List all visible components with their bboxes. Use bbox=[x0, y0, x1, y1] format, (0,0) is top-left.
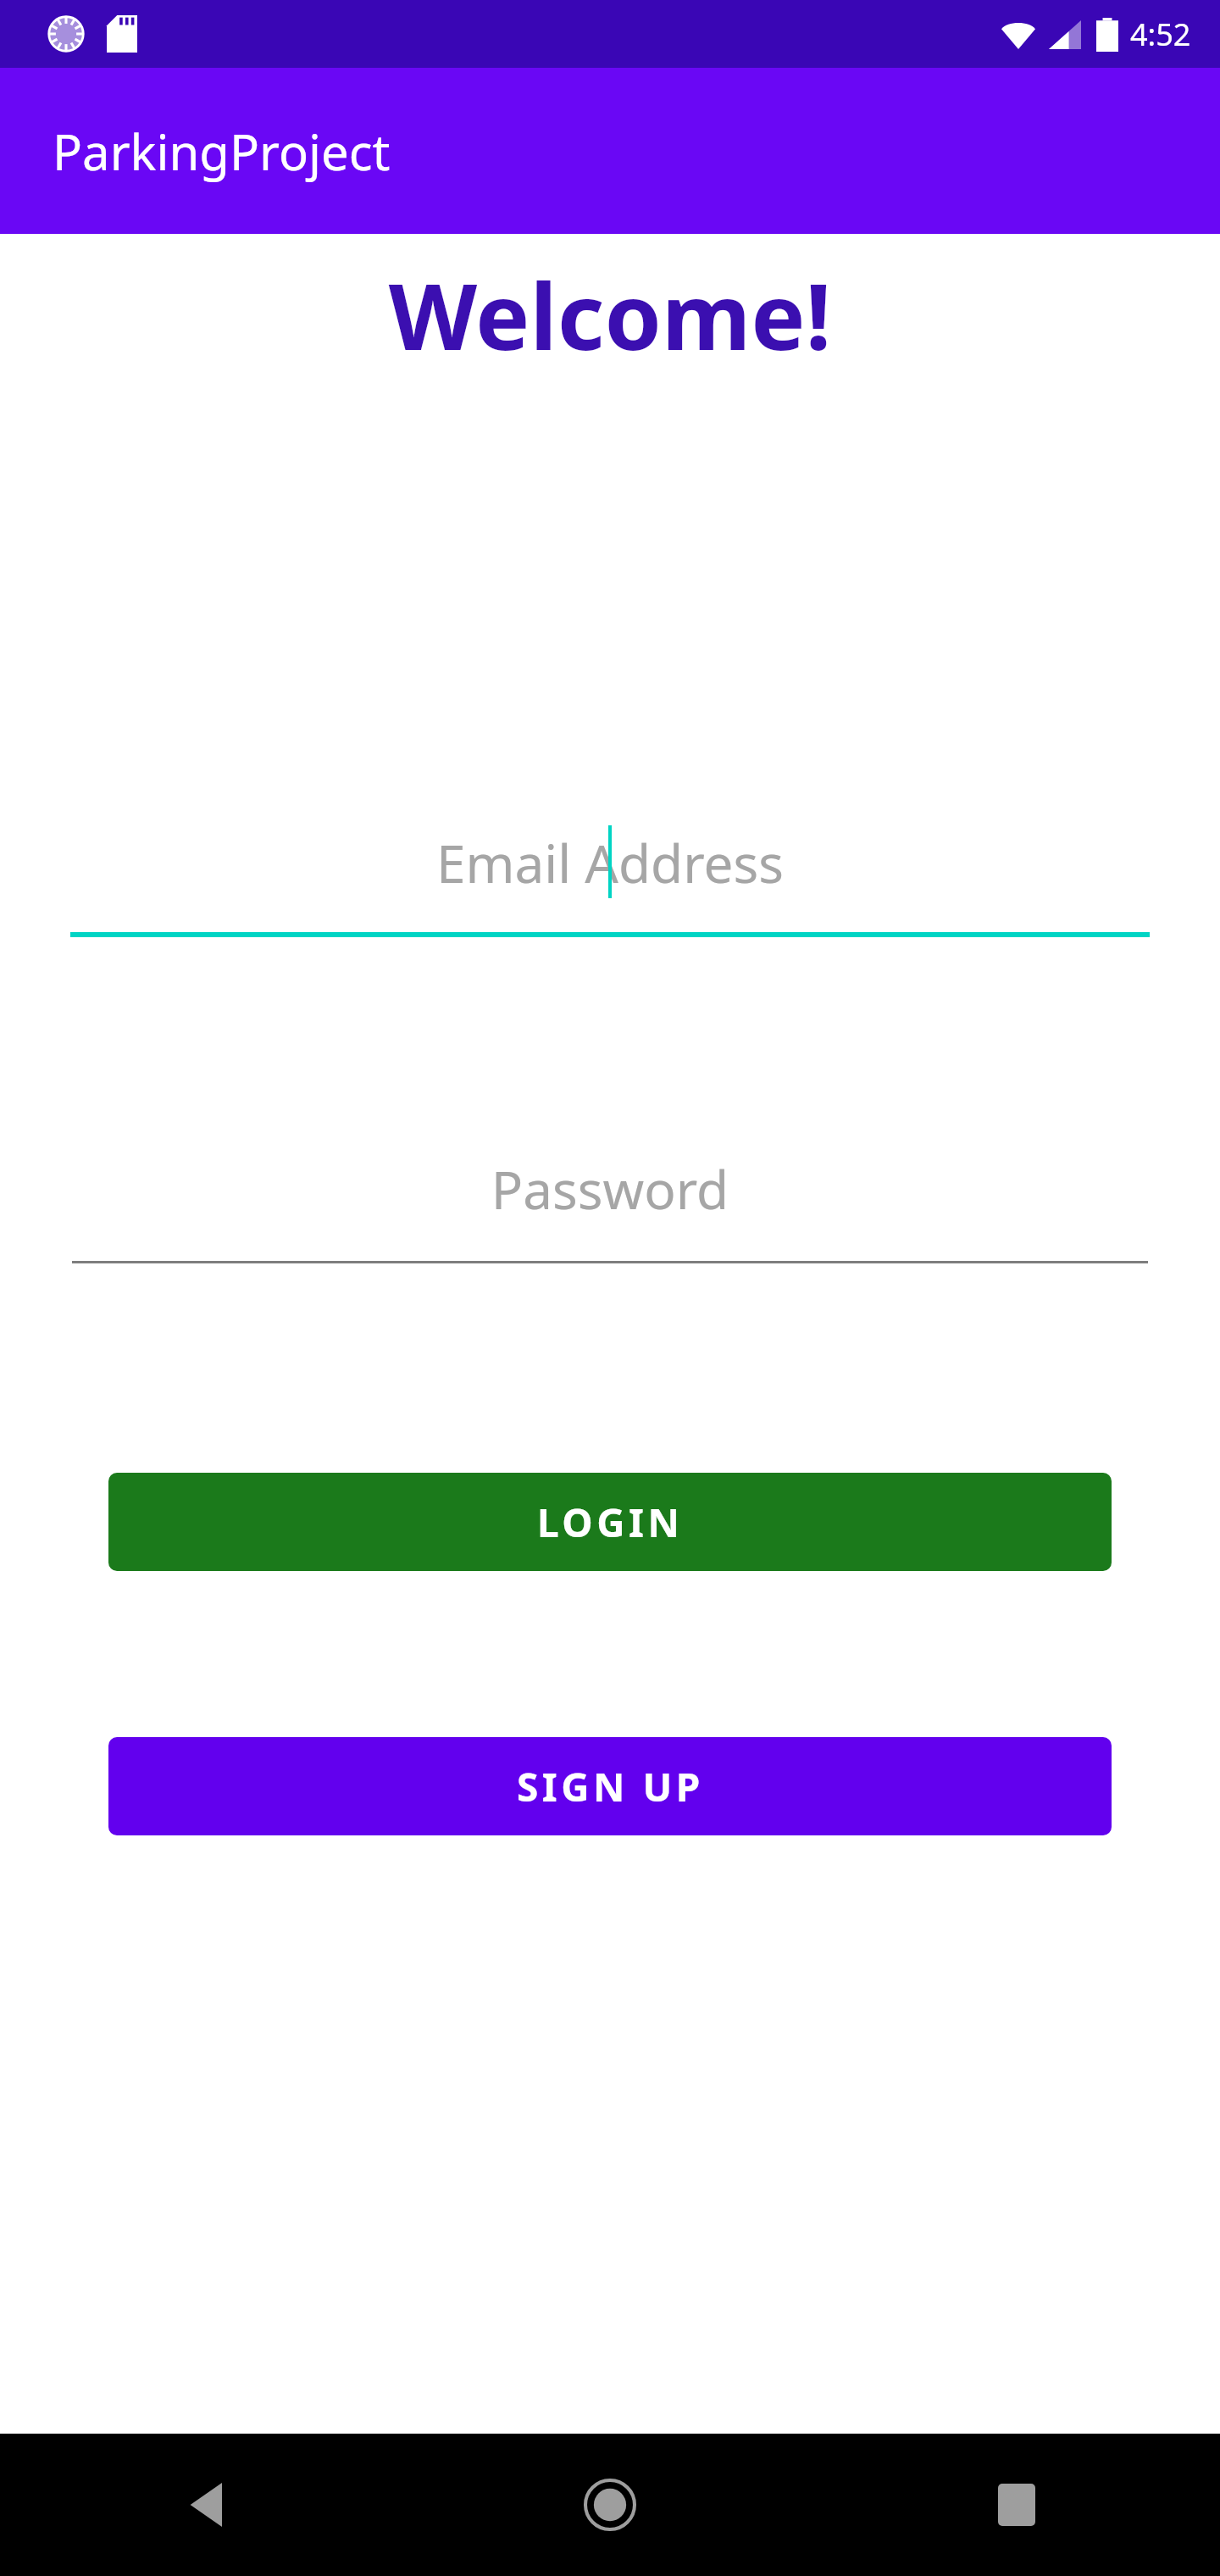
button[interactable]: Recent apps bbox=[813, 2434, 1220, 2576]
button[interactable]: Home bbox=[407, 2434, 813, 2576]
staticText: Email Address bbox=[70, 827, 1150, 898]
button[interactable]: LOGIN bbox=[108, 1473, 1112, 1571]
button[interactable]: Password bbox=[72, 1153, 1148, 1263]
staticText: SIGN UP bbox=[517, 1760, 704, 1813]
staticText: LOGIN bbox=[537, 1496, 684, 1549]
staticText: ParkingProject bbox=[53, 118, 391, 185]
staticText: 4:52 bbox=[1130, 14, 1191, 55]
staticText: Remember Me bbox=[303, 1477, 633, 1541]
button[interactable]: Email Address bbox=[70, 827, 1150, 937]
staticText: Welcome! bbox=[0, 253, 1220, 377]
staticText: Password bbox=[72, 1153, 1148, 1224]
button[interactable]: Back bbox=[0, 2434, 407, 2576]
button[interactable]: SIGN UP bbox=[108, 1737, 1112, 1835]
button[interactable]: Remember Me bbox=[303, 1454, 881, 1564]
